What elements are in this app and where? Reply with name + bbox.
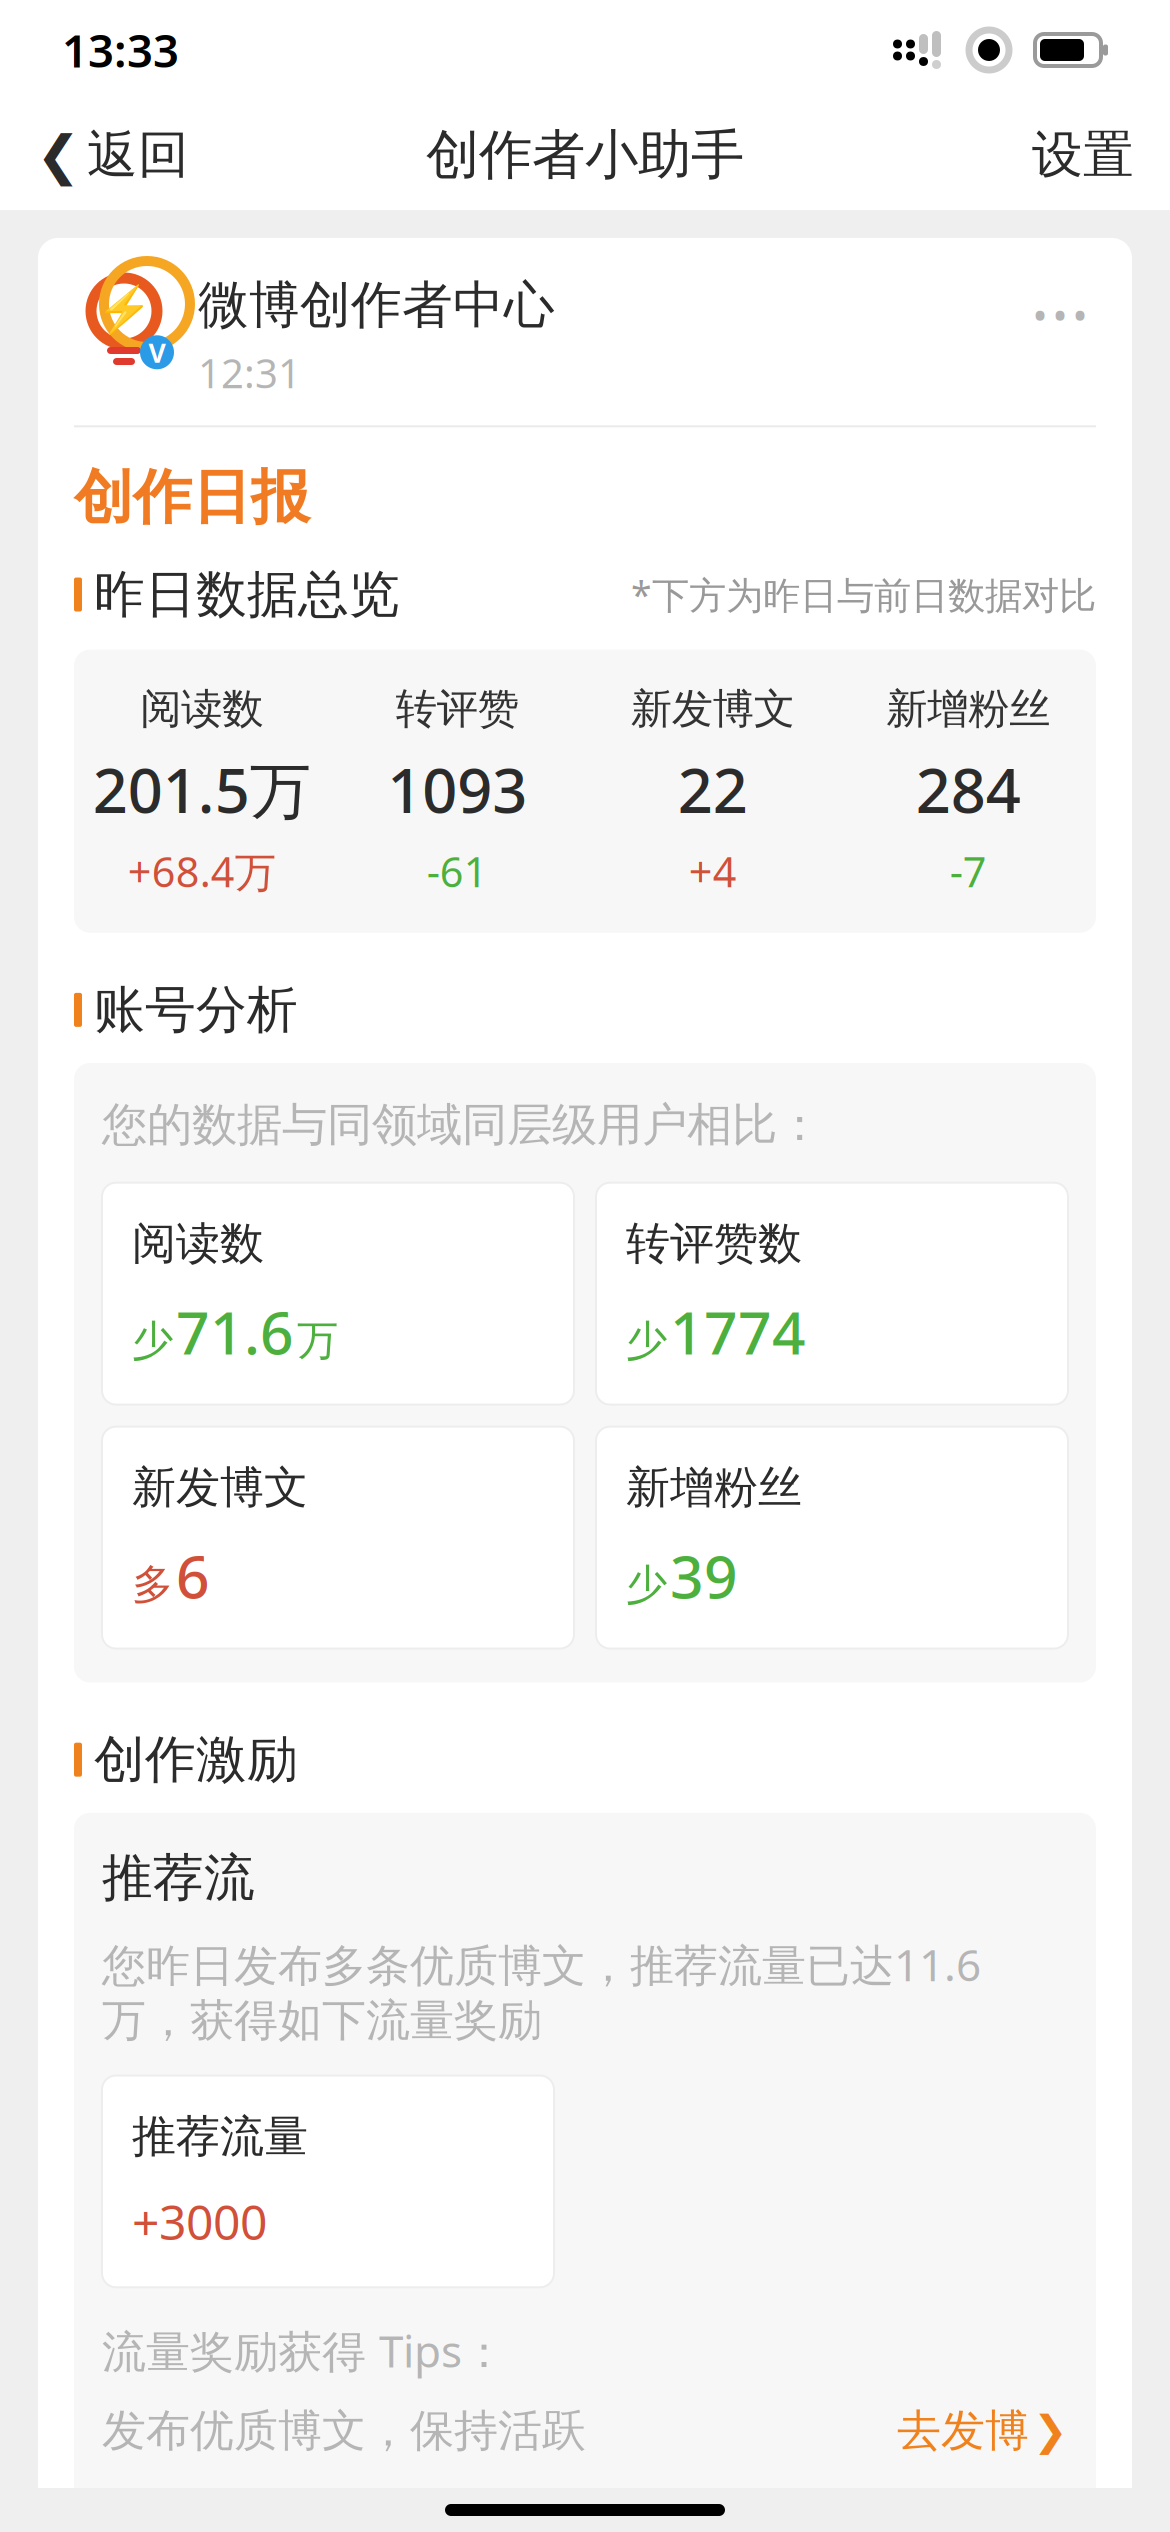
staticText: • • •	[1034, 294, 1086, 336]
staticText: 您的数据与同领域同层级用户相比：	[102, 1097, 822, 1153]
staticText: -7	[950, 844, 987, 899]
staticText: 去发博	[897, 2404, 1029, 2458]
staticText: ❯	[1033, 2407, 1068, 2454]
staticText: 转评赞	[396, 684, 519, 734]
staticText: 201.5万	[93, 748, 311, 830]
button[interactable]: 去发博	[877, 2396, 1068, 2466]
staticText: 流量奖励获得 Tips：	[102, 2321, 506, 2380]
staticText: 284	[916, 748, 1021, 830]
staticText: 少	[626, 1559, 667, 1610]
staticText: ❮	[36, 125, 81, 185]
staticText: 13:33	[62, 20, 179, 80]
button[interactable]: 新发博文	[102, 1427, 574, 1649]
staticText: 1774	[670, 1293, 806, 1371]
button[interactable]: 设置	[1020, 110, 1146, 200]
staticText: 少	[626, 1315, 667, 1366]
staticText: 12:31	[198, 346, 301, 399]
staticText: 22	[678, 748, 748, 830]
staticText: 多	[132, 1559, 173, 1610]
staticText: 您昨日发布多条优质博文，推荐流量已达11.6万，获得如下流量奖励	[102, 1935, 981, 2047]
staticText: 71.6	[176, 1293, 294, 1371]
staticText: 推荐流量	[132, 2109, 308, 2163]
button[interactable]: 推荐流量	[102, 2075, 554, 2287]
staticText: V	[148, 335, 165, 370]
staticText: 6	[176, 1537, 210, 1615]
staticText: 阅读数	[132, 1217, 264, 1271]
staticText: +3000	[132, 2190, 267, 2253]
staticText: +68.4万	[128, 844, 276, 899]
staticText: 新增粉丝	[886, 684, 1050, 734]
staticText: 微博创作者中心	[198, 274, 555, 336]
staticText: 账号分析	[94, 979, 298, 1041]
staticText: 39	[670, 1537, 738, 1615]
staticText: 新增粉丝	[626, 1461, 802, 1515]
staticText: 万	[297, 1315, 338, 1366]
staticText: 创作激励	[94, 1729, 298, 1791]
staticText: ⚡	[96, 284, 152, 336]
staticText: 新发博文	[132, 1461, 308, 1515]
button[interactable]: ❮	[24, 110, 201, 200]
staticText: 创作者小助手	[426, 122, 744, 188]
button[interactable]: 新增粉丝	[596, 1427, 1068, 1649]
staticText: -61	[427, 844, 488, 899]
staticText: 少	[132, 1315, 173, 1366]
staticText: 1093	[387, 748, 527, 830]
staticText: 转评赞数	[626, 1217, 802, 1271]
button[interactable]: 更多	[1024, 268, 1096, 362]
staticText: *下方为昨日与前日数据对比	[631, 570, 1096, 619]
staticText: 昨日数据总览	[94, 563, 400, 626]
staticText: 推荐流	[102, 1847, 255, 1909]
staticText: 发布优质博文，保持活跃	[102, 2404, 586, 2458]
staticText: 返回	[87, 124, 189, 186]
staticText: 设置	[1032, 124, 1134, 186]
staticText: +4	[689, 844, 737, 899]
staticText: 新发博文	[631, 684, 795, 734]
staticText: 阅读数	[140, 684, 263, 734]
staticText: 创作日报	[74, 461, 310, 533]
button[interactable]: 阅读数	[102, 1183, 574, 1405]
button[interactable]: 转评赞数	[596, 1183, 1068, 1405]
